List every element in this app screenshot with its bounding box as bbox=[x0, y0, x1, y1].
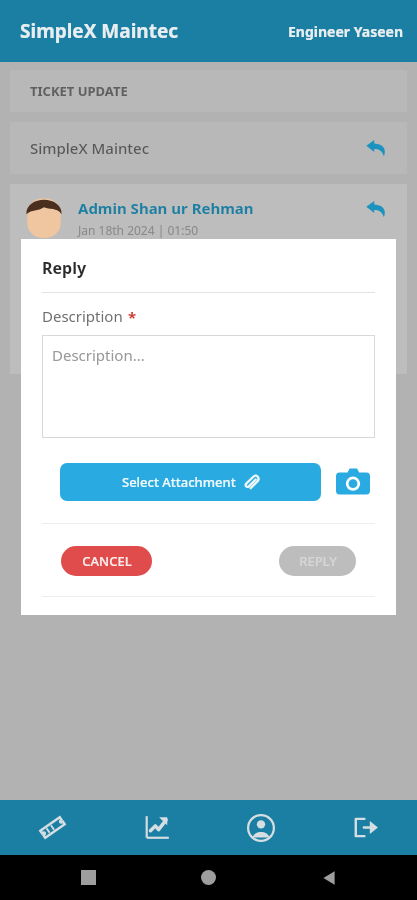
staticText: Description bbox=[42, 306, 123, 326]
button[interactable]: SimpleX Maintec bbox=[10, 122, 407, 174]
staticText: SimpleX Maintec bbox=[30, 138, 150, 158]
button[interactable]: Admin Shan ur Rehman bbox=[10, 184, 407, 374]
button[interactable]: Profile bbox=[209, 800, 313, 855]
staticText: Select Attachment bbox=[122, 473, 236, 491]
button[interactable]: CANCEL bbox=[61, 546, 152, 576]
staticText: * bbox=[128, 307, 137, 327]
button[interactable]: Logout bbox=[313, 800, 417, 855]
button[interactable]: TICKET UPDATE bbox=[10, 70, 407, 112]
button[interactable]: Description... bbox=[42, 335, 375, 438]
button[interactable]: Select Attachment bbox=[60, 463, 321, 501]
staticText: Jan 18th 2024 | 01:50 bbox=[78, 222, 199, 238]
button[interactable]: Reports bbox=[105, 800, 209, 855]
staticText: Reply bbox=[42, 257, 87, 279]
staticText: TICKET UPDATE bbox=[30, 82, 128, 100]
staticText: REPLY bbox=[299, 552, 337, 570]
button[interactable]: Take photo bbox=[331, 460, 375, 504]
staticText: SimpleX Maintec bbox=[20, 18, 179, 44]
button[interactable]: Reply bbox=[363, 135, 389, 161]
staticText: Admin Shan ur Rehman bbox=[78, 198, 254, 218]
button[interactable]: REPLY bbox=[279, 546, 356, 576]
staticText: Engineer Yaseen bbox=[288, 22, 403, 41]
button[interactable]: Reply to message bbox=[363, 196, 389, 222]
button[interactable]: Tickets bbox=[0, 800, 105, 855]
staticText: Description... bbox=[52, 345, 145, 365]
staticText: CANCEL bbox=[82, 552, 132, 570]
